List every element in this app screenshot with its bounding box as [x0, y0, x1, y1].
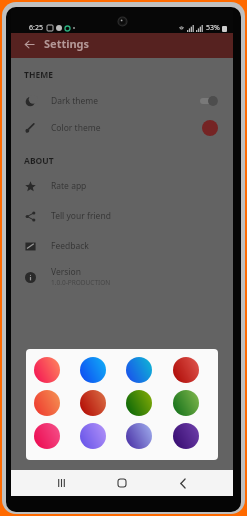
button[interactable]: Version — [11, 263, 233, 290]
staticText: 1.0.0-PRODUCTION — [51, 278, 111, 287]
staticText: Feedback — [51, 240, 89, 252]
staticText: Version — [51, 266, 81, 278]
button[interactable]: Dark theme — [11, 87, 233, 114]
button[interactable]: Feedback — [11, 232, 233, 259]
button[interactable]: Home — [111, 472, 133, 494]
button[interactable]: Color option — [34, 390, 60, 416]
button[interactable]: Color option — [34, 357, 60, 383]
button[interactable]: Color option — [126, 423, 152, 449]
button[interactable]: Color option — [126, 357, 152, 383]
staticText: ABOUT — [24, 155, 54, 167]
button[interactable]: Color theme — [11, 114, 233, 141]
button[interactable]: Tell your friend — [11, 202, 233, 229]
button[interactable]: Color option — [173, 357, 199, 383]
staticText: Tell your friend — [51, 210, 111, 222]
button[interactable]: Color option — [126, 390, 152, 416]
button[interactable]: Color option — [80, 357, 106, 383]
staticText: Color theme — [51, 122, 101, 134]
button[interactable]: Rate app — [11, 172, 233, 199]
button[interactable]: Back — [172, 472, 194, 494]
button[interactable]: Navigate up — [19, 34, 39, 54]
button[interactable]: Dark theme toggle — [200, 95, 218, 107]
staticText: Dark theme — [51, 95, 99, 107]
staticText: 6:25 — [29, 23, 43, 33]
button[interactable]: Recent apps — [50, 472, 72, 494]
button[interactable]: Color option — [173, 423, 199, 449]
staticText: THEME — [24, 69, 53, 81]
button[interactable]: Color option — [173, 390, 199, 416]
button[interactable]: Pick color — [202, 120, 218, 136]
button[interactable]: Color option — [80, 390, 106, 416]
button[interactable]: Color option — [80, 423, 106, 449]
staticText: Settings — [44, 36, 90, 51]
staticText: 53% — [206, 23, 220, 33]
staticText: Rate app — [51, 180, 87, 192]
button[interactable]: Color option — [34, 423, 60, 449]
